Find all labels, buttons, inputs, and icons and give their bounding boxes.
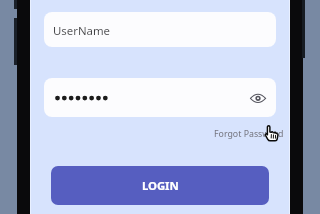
staticText: LOGIN [142,178,179,194]
button[interactable]: Show password [44,78,276,117]
button[interactable]: LOGIN [51,166,269,205]
button[interactable]: UserName [44,12,276,47]
button[interactable]: Forgot Password [214,128,284,140]
staticText: Forgot Password [214,128,284,140]
button[interactable]: Show password [247,87,269,109]
staticText: UserName [53,23,111,39]
